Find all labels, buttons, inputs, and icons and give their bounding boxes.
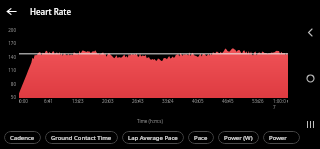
staticText: 80 [10, 81, 16, 87]
staticText: 6:41 [44, 98, 53, 104]
staticText: 0:00 [19, 98, 28, 104]
staticText: Heart Rate [30, 6, 71, 17]
staticText: 110 [8, 67, 16, 73]
staticText: 46:45 [222, 98, 234, 104]
staticText: 200 [8, 27, 16, 33]
button[interactable]: Power (W/kg) [263, 131, 300, 144]
staticText: 33:24 [162, 98, 174, 104]
button[interactable]: Power (W) [218, 131, 259, 144]
staticText: 1:00:07 [273, 98, 288, 110]
staticText: Ground Contact Time [51, 134, 112, 142]
staticText: 40:05 [192, 98, 204, 104]
button[interactable]: Home [300, 68, 320, 88]
staticText: Power (W/kg) [269, 134, 294, 142]
staticText: 170 [8, 40, 16, 46]
button[interactable]: Ground Contact Time [45, 131, 118, 144]
button[interactable]: Navigate up [0, 0, 22, 22]
staticText: Power (W) [224, 134, 253, 142]
button[interactable]: Back [300, 22, 320, 42]
staticText: Pace [194, 134, 208, 142]
button[interactable]: Lap Average Pace [122, 131, 184, 144]
button[interactable]: Recent apps [300, 114, 320, 134]
staticText: Cadence [10, 134, 35, 142]
staticText: Lap Average Pace [128, 134, 178, 142]
staticText: 53:26 [252, 98, 264, 104]
button[interactable]: Pace [188, 131, 214, 144]
staticText: 26:43 [132, 98, 144, 104]
staticText: 50 [10, 94, 16, 100]
staticText: 20:03 [102, 98, 114, 104]
staticText: Time (h:m:s) [137, 118, 163, 124]
staticText: 140 [8, 54, 16, 60]
button[interactable]: Cadence [4, 131, 41, 144]
staticText: 13:23 [72, 98, 84, 104]
